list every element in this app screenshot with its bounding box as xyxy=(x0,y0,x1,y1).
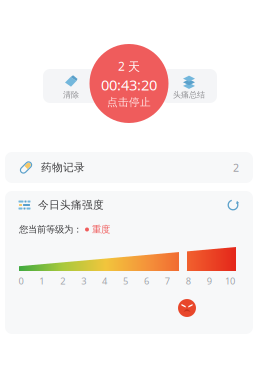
staticText: 药物记录 xyxy=(41,161,85,174)
staticText: 2 xyxy=(233,160,239,175)
button[interactable]: 清除 xyxy=(43,69,99,103)
staticText: 点击停止 xyxy=(107,96,151,109)
button[interactable]: 头痛总结 xyxy=(161,69,217,103)
staticText: 2 天 xyxy=(118,58,140,74)
staticText: 4 xyxy=(102,275,107,287)
staticText: 0 xyxy=(18,275,23,287)
button[interactable]: 2 天 xyxy=(89,44,168,123)
staticText: 8 xyxy=(186,275,191,287)
staticText: 头痛总结 xyxy=(173,90,205,100)
button[interactable]: Refresh xyxy=(227,199,239,211)
staticText: 5 xyxy=(123,275,128,287)
staticText: 2 xyxy=(60,275,65,287)
staticText: 3 xyxy=(81,275,86,287)
staticText: 重度 xyxy=(92,224,110,235)
staticText: 今日头痛强度 xyxy=(38,198,104,211)
staticText: 清除 xyxy=(63,90,79,100)
staticText: 7 xyxy=(165,275,170,287)
staticText: 您当前等级为： xyxy=(19,224,82,235)
staticText: 1 xyxy=(39,275,44,287)
button[interactable]: 药物记录 xyxy=(0,152,258,183)
staticText: 10 xyxy=(225,275,235,287)
staticText: 6 xyxy=(144,275,149,287)
staticText: 9 xyxy=(207,275,212,287)
staticText: 00:43:20 xyxy=(101,75,157,95)
